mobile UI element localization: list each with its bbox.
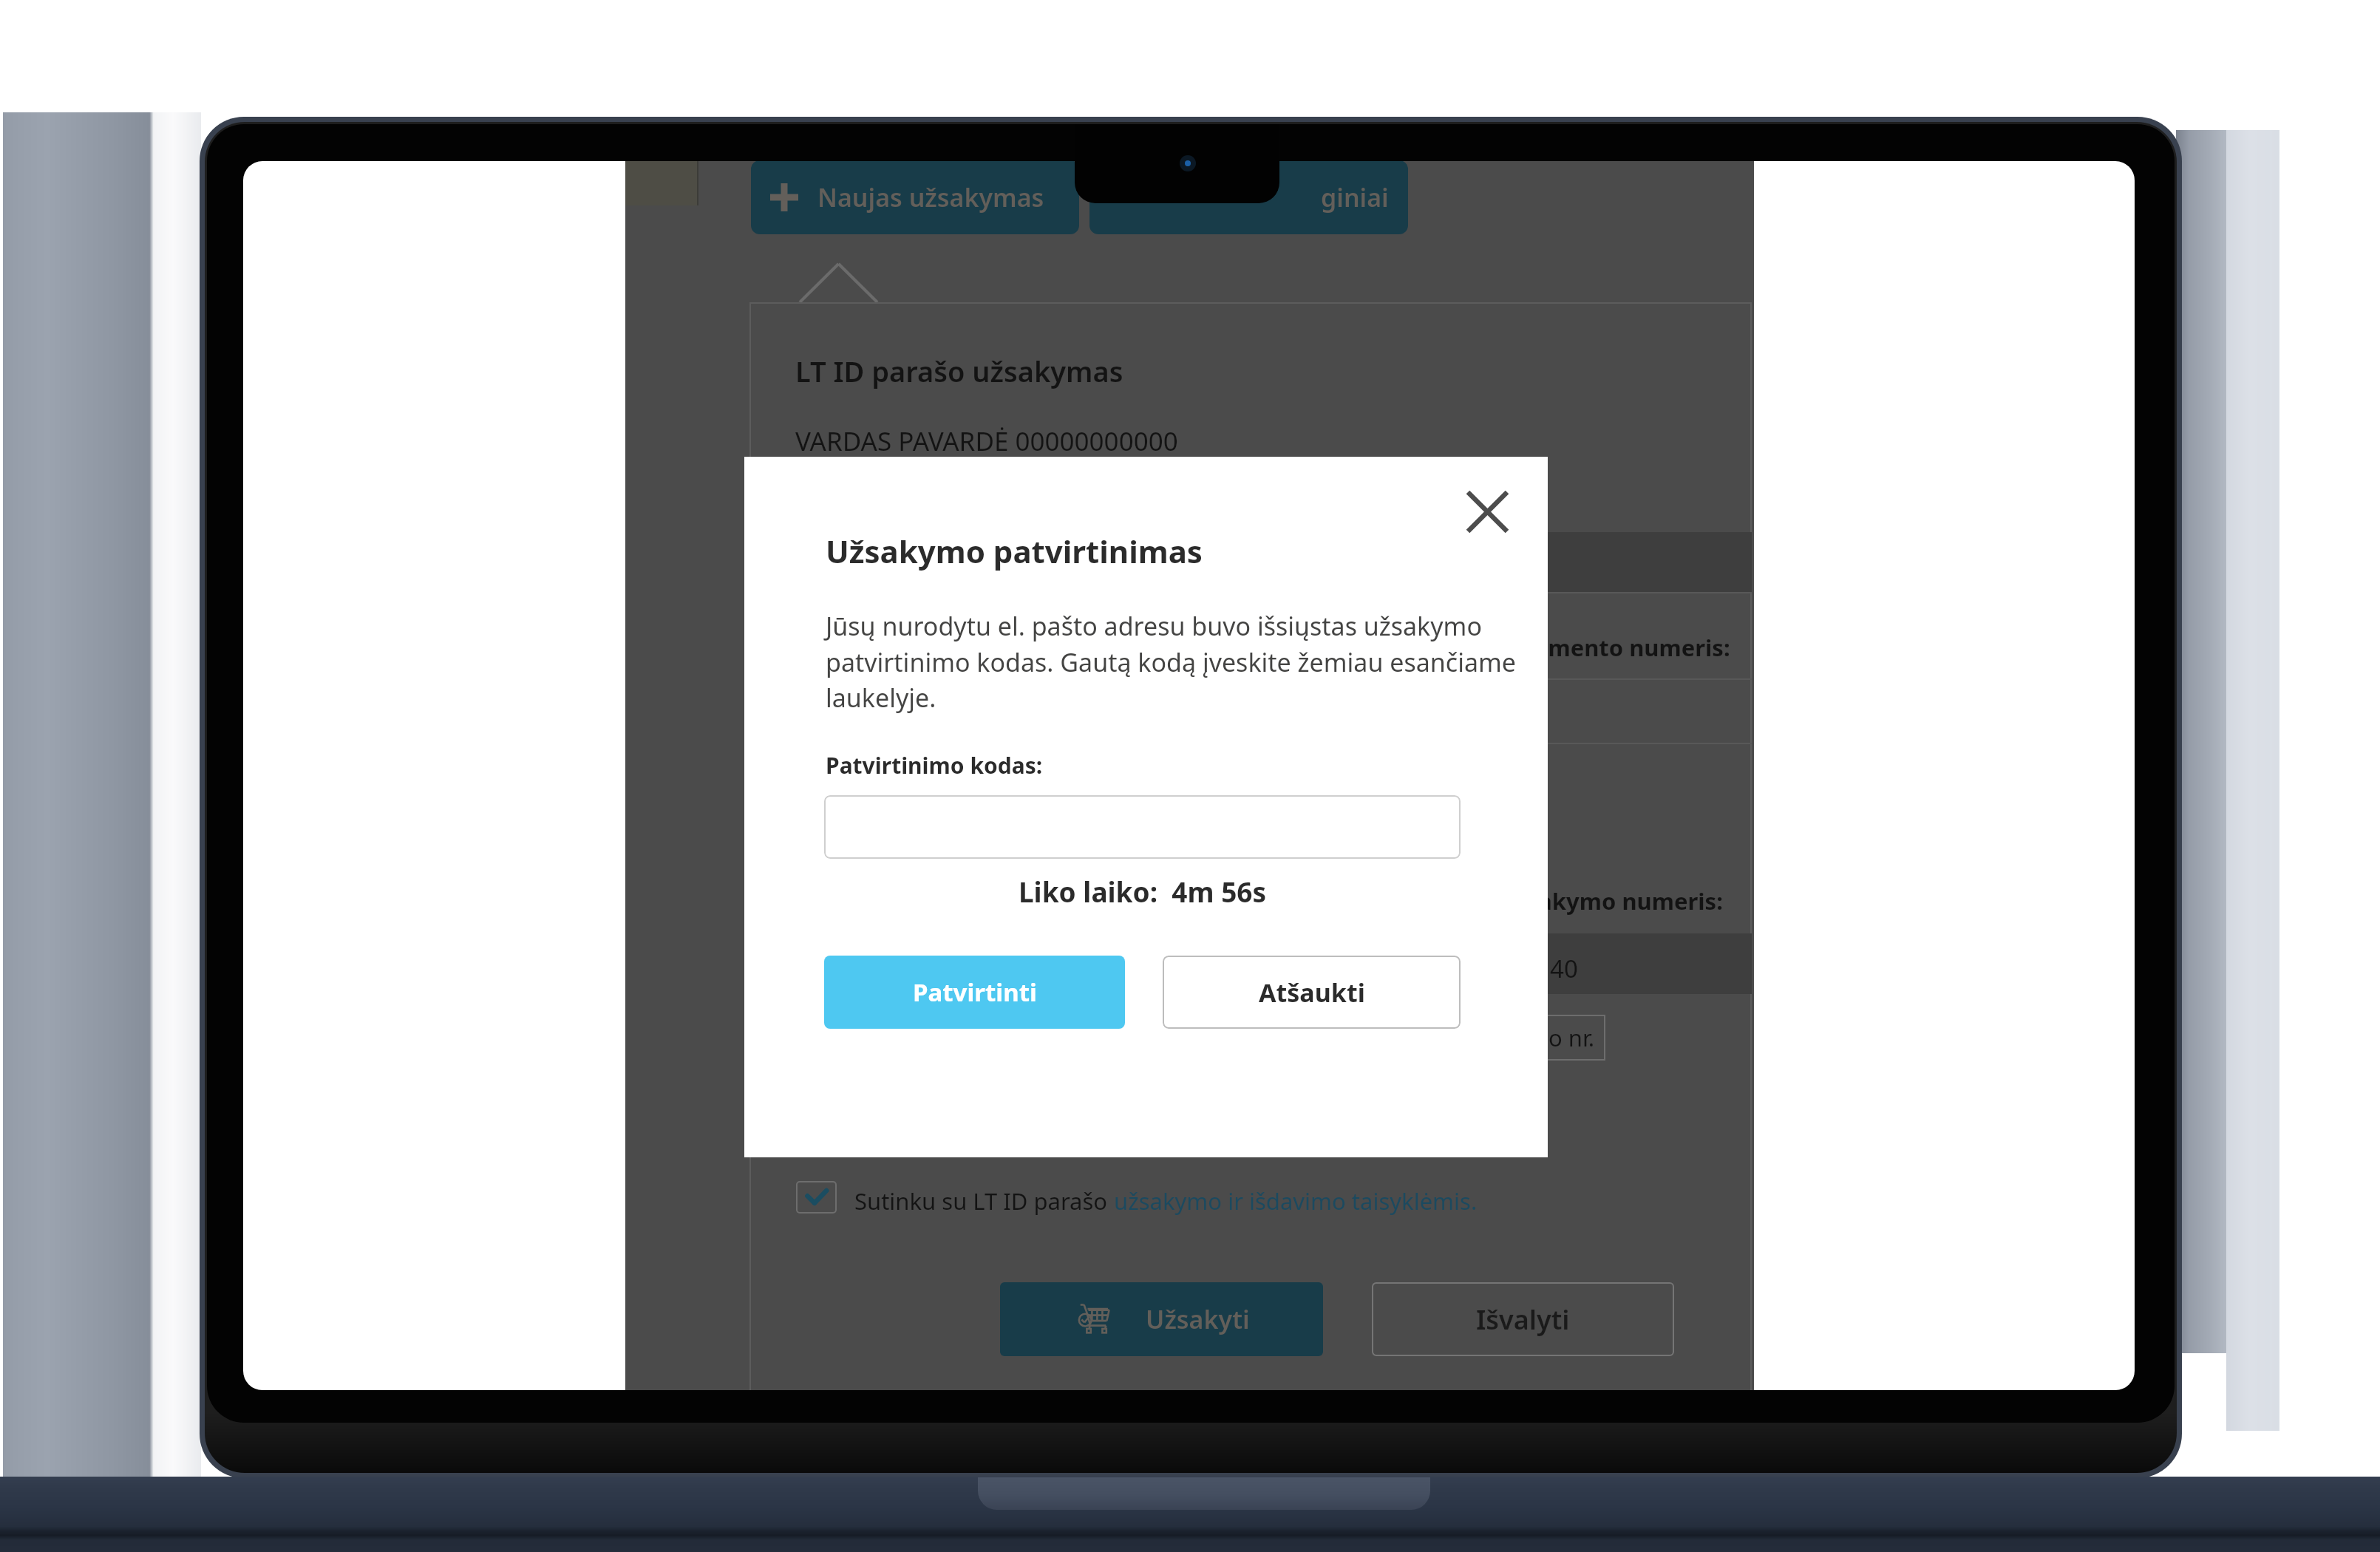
staticText: Atšaukti xyxy=(1259,976,1365,1010)
staticText: Patvirtinimo kodas: xyxy=(826,750,1043,780)
staticText: Dokumento numeris: xyxy=(1488,632,1730,663)
staticText: užsakymo ir išdavimo taisyklėmis. xyxy=(1114,1185,1478,1216)
staticText: Jūsų nurodytu el. pašto adresu buvo išsi… xyxy=(826,609,1516,715)
button[interactable]: Užsakyti xyxy=(1000,1282,1323,1356)
staticText: giniai xyxy=(1321,180,1389,214)
staticText: Užsakymo numeris: xyxy=(1498,885,1723,916)
staticText: 40 xyxy=(1550,952,1578,985)
staticText: Užsakymo patvirtinimas xyxy=(826,530,1203,572)
staticText: Užsakyti xyxy=(1146,1302,1250,1336)
staticText: Išvalyti xyxy=(1476,1301,1570,1338)
button[interactable]: Naujas užsakymas xyxy=(751,161,1079,234)
button[interactable] xyxy=(824,795,1461,859)
staticText: VARDAS PAVARDĖ 00000000000 xyxy=(795,423,1178,459)
staticText: LT ID parašo užsakymas xyxy=(795,352,1123,390)
button[interactable]: o nr. xyxy=(1505,1015,1605,1061)
staticText: o nr. xyxy=(1548,1022,1595,1053)
staticText: Patvirtinti xyxy=(913,976,1037,1009)
button[interactable]: Atšaukti xyxy=(1163,956,1461,1029)
button[interactable] xyxy=(796,1181,837,1214)
staticText: Naujas užsakymas xyxy=(817,180,1044,214)
button[interactable]: Close xyxy=(1443,467,1531,556)
button[interactable]: giniai xyxy=(1089,161,1408,234)
button[interactable]: Išvalyti xyxy=(1372,1282,1674,1356)
staticText: Sutinku su LT ID parašo xyxy=(854,1185,1114,1216)
button[interactable]: Patvirtinti xyxy=(824,956,1125,1029)
staticText: Liko laiko: 4m 56s xyxy=(824,873,1461,910)
